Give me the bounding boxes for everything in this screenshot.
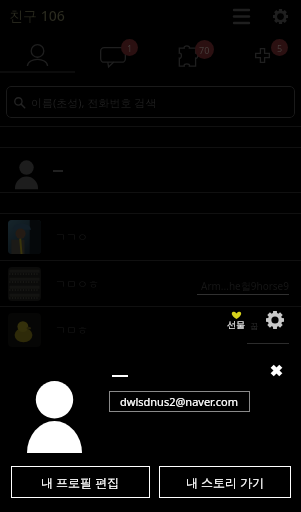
button[interactable]: Menu bbox=[226, 2, 256, 30]
button[interactable]: Close bbox=[262, 356, 290, 384]
button[interactable]: ㄱㄱㅇ bbox=[0, 214, 301, 260]
button[interactable]: Settings bbox=[266, 311, 284, 329]
button[interactable]: Chats bbox=[86, 30, 140, 72]
staticText: 내 프로필 편집 bbox=[41, 474, 120, 490]
staticText: 이름(초성), 전화번호 검색 bbox=[31, 95, 157, 110]
staticText: 내 스토리 가기 bbox=[186, 474, 265, 490]
button[interactable]: 내 스토리 가기 bbox=[159, 466, 291, 498]
staticText: dwlsdnus2@naver.com bbox=[120, 394, 239, 409]
button[interactable]: Games bbox=[164, 30, 214, 72]
staticText: 1 bbox=[127, 42, 133, 54]
staticText: Arm...he헐9horse9 bbox=[201, 279, 289, 293]
staticText: ㄱㅁㅎ bbox=[55, 323, 88, 337]
button[interactable]: 내 프로필 편집 bbox=[11, 466, 150, 498]
staticText: 5 bbox=[277, 42, 283, 54]
staticText: 꿉 bbox=[250, 321, 258, 331]
button[interactable]: Add friend bbox=[241, 30, 284, 72]
staticText: ㄱㄱㅇ bbox=[55, 230, 88, 244]
button[interactable]: Settings bbox=[265, 1, 295, 31]
button[interactable]: ㄱㅁㅎ bbox=[0, 307, 301, 353]
button[interactable]: Friends bbox=[13, 30, 62, 72]
staticText: ㄱㅁㅇㅎ bbox=[55, 277, 99, 291]
button[interactable]: 이름(초성), 전화번호 검색 bbox=[6, 86, 295, 118]
button[interactable] bbox=[0, 148, 301, 192]
button[interactable]: dwlsdnus2@naver.com bbox=[109, 391, 250, 412]
staticText: 70 bbox=[199, 44, 210, 56]
staticText: 친구 106 bbox=[9, 6, 65, 25]
button[interactable]: ㄱㅁㅇㅎ bbox=[0, 261, 301, 307]
staticText: 선물 bbox=[227, 319, 245, 330]
